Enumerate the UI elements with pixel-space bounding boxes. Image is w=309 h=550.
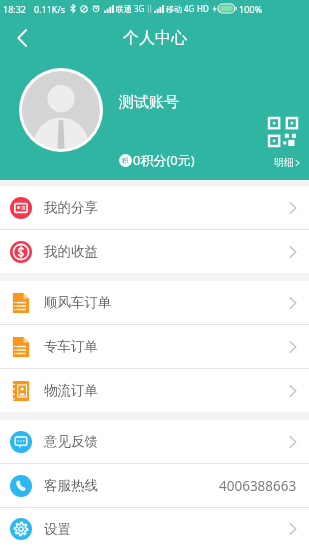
staticText: 我的分享: [44, 199, 98, 216]
button[interactable]: 我的收益: [0, 230, 309, 273]
button[interactable]: 意见反馈: [0, 420, 309, 463]
staticText: 4G: [184, 3, 195, 14]
staticText: 0积分(0元): [133, 151, 195, 169]
staticText: 顺风车订单: [44, 294, 112, 311]
staticText: 测试账号: [119, 93, 179, 112]
staticText: 积: [122, 156, 129, 165]
button[interactable]: 我的分享: [0, 186, 309, 229]
staticText: 我的收益: [44, 243, 98, 260]
button[interactable]: 客服热线: [0, 464, 309, 507]
staticText: 移动: [166, 4, 182, 14]
staticText: 设置: [44, 521, 71, 538]
staticText: 3G: [134, 3, 145, 14]
button[interactable]: 物流订单: [0, 369, 309, 412]
staticText: 18:32: [3, 3, 27, 15]
staticText: 4006388663: [219, 477, 297, 495]
staticText: 明细: [274, 156, 294, 169]
button[interactable]: Avatar: [19, 68, 103, 152]
staticText: 联通: [116, 4, 132, 14]
button[interactable]: 明细: [274, 156, 300, 169]
staticText: 意见反馈: [44, 433, 98, 450]
button[interactable]: 设置: [0, 508, 309, 550]
staticText: 物流订单: [44, 382, 98, 399]
staticText: 专车订单: [44, 338, 98, 355]
button[interactable]: 顺风车订单: [0, 281, 309, 324]
staticText: 100%: [239, 3, 262, 15]
staticText: 个人中心: [123, 28, 187, 48]
staticText: HD: [197, 3, 209, 14]
button[interactable]: 专车订单: [0, 325, 309, 368]
button[interactable]: QR code: [269, 118, 297, 146]
button[interactable]: Back: [4, 20, 40, 56]
staticText: 0.11K/s: [34, 3, 66, 15]
staticText: 客服热线: [44, 477, 98, 494]
